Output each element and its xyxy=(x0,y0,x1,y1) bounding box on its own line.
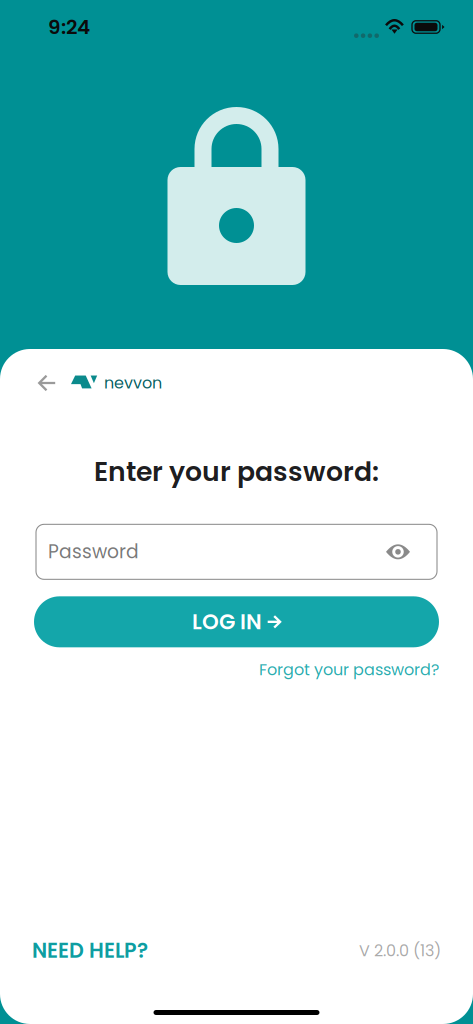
button[interactable]: Back xyxy=(29,365,65,401)
button[interactable]: NEED HELP? xyxy=(32,936,148,965)
button[interactable]: Forgot your password? xyxy=(259,658,439,681)
button[interactable]: Show password xyxy=(378,532,418,572)
staticText: Enter your password: xyxy=(94,453,379,490)
staticText: V 2.0.0 (13) xyxy=(359,939,441,962)
staticText: Password xyxy=(48,539,139,565)
staticText: NEED HELP? xyxy=(32,936,148,965)
button[interactable]: LOG IN xyxy=(34,596,439,647)
staticText: 9:24 xyxy=(48,13,90,41)
staticText: Forgot your password? xyxy=(259,658,439,681)
staticText: nevvon xyxy=(104,372,162,394)
staticText: LOG IN xyxy=(192,607,262,637)
